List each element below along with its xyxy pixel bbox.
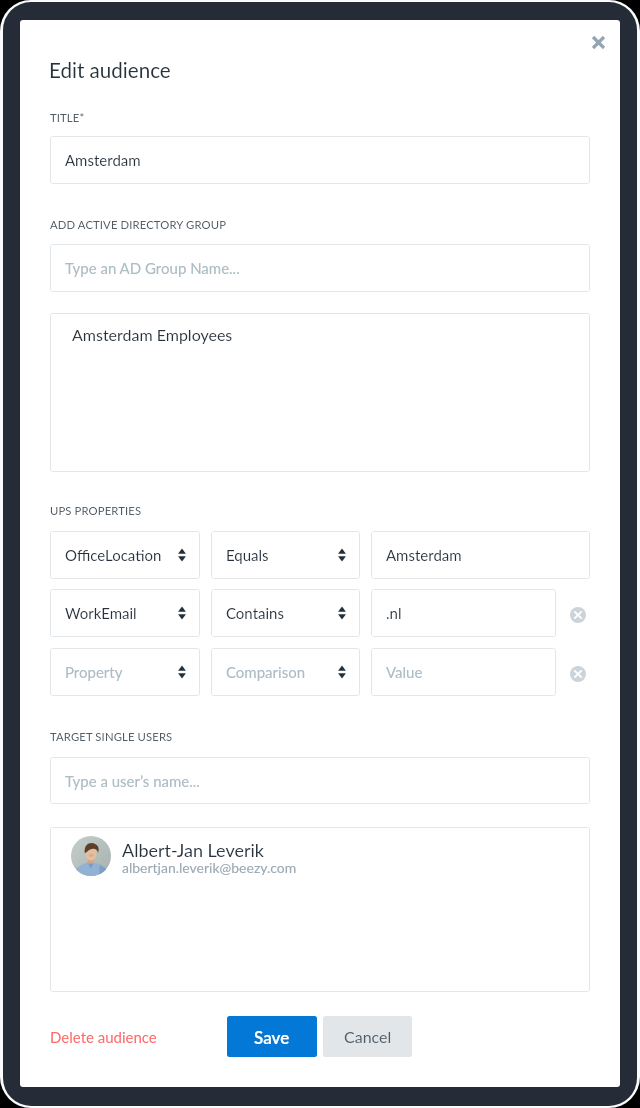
- button[interactable]: Equals: [211, 531, 360, 579]
- staticText: Contains: [226, 604, 284, 622]
- button[interactable]: Contains: [211, 589, 360, 637]
- button[interactable]: Albert-Jan Leverik: [71, 836, 551, 876]
- staticText: albertjan.leverik@beezy.com: [122, 859, 297, 876]
- staticText: TARGET SINGLE USERS: [50, 730, 173, 744]
- staticText: Amsterdam: [386, 546, 462, 564]
- staticText: Property: [65, 663, 123, 681]
- staticText: OfficeLocation: [65, 546, 162, 564]
- button[interactable]: Value: [371, 648, 556, 696]
- staticText: Save: [254, 1027, 290, 1047]
- button[interactable]: Albert-Jan Leverik: [50, 827, 590, 992]
- button[interactable]: WorkEmail: [50, 589, 200, 637]
- button[interactable]: Comparison: [211, 648, 360, 696]
- staticText: WorkEmail: [65, 604, 137, 622]
- staticText: Amsterdam: [65, 151, 141, 169]
- staticText: Value: [386, 663, 423, 681]
- staticText: Delete audience: [50, 1028, 157, 1046]
- button[interactable]: Remove condition: [566, 603, 590, 627]
- staticText: ADD ACTIVE DIRECTORY GROUP: [50, 218, 227, 232]
- staticText: Albert-Jan Leverik: [122, 839, 264, 861]
- staticText: .nl: [386, 604, 402, 622]
- button[interactable]: Type a user’s name...: [50, 757, 590, 804]
- staticText: TITLE*: [50, 111, 85, 125]
- button[interactable]: Type an AD Group Name...: [50, 244, 590, 292]
- button[interactable]: Delete audience: [44, 1023, 163, 1051]
- staticText: Comparison: [226, 663, 306, 681]
- button[interactable]: OfficeLocation: [50, 531, 200, 579]
- staticText: Type an AD Group Name...: [65, 259, 240, 277]
- button[interactable]: Amsterdam: [50, 136, 590, 184]
- button[interactable]: Remove condition: [566, 662, 590, 686]
- button[interactable]: Amsterdam: [371, 531, 590, 579]
- staticText: UPS PROPERTIES: [50, 504, 142, 518]
- button[interactable]: Close: [582, 26, 614, 58]
- staticText: Amsterdam Employees: [72, 325, 233, 344]
- button[interactable]: Property: [50, 648, 200, 696]
- button[interactable]: Cancel: [323, 1016, 412, 1057]
- button[interactable]: Save: [227, 1016, 317, 1057]
- staticText: Edit audience: [49, 58, 171, 83]
- button[interactable]: .nl: [371, 589, 556, 637]
- staticText: Cancel: [344, 1027, 392, 1046]
- staticText: Equals: [226, 546, 269, 564]
- button[interactable]: Amsterdam Employees: [50, 313, 590, 472]
- staticText: Type a user’s name...: [65, 772, 200, 790]
